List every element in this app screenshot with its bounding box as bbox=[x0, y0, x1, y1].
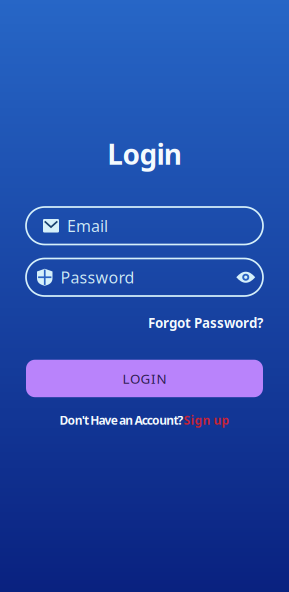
button[interactable]: Sign up bbox=[184, 412, 230, 428]
staticText: Sign up bbox=[184, 412, 230, 428]
staticText: Forgot Password? bbox=[148, 314, 263, 332]
staticText: Password bbox=[60, 267, 134, 288]
staticText: Don't Have an Account? bbox=[59, 412, 184, 428]
staticText: LOGIN bbox=[122, 370, 166, 387]
button[interactable]: Forgot Password? bbox=[148, 314, 263, 332]
staticText: Login bbox=[107, 135, 182, 173]
button[interactable]: Show password bbox=[236, 271, 255, 283]
staticText: Email bbox=[67, 215, 108, 236]
button[interactable]: LOGIN bbox=[26, 360, 263, 397]
